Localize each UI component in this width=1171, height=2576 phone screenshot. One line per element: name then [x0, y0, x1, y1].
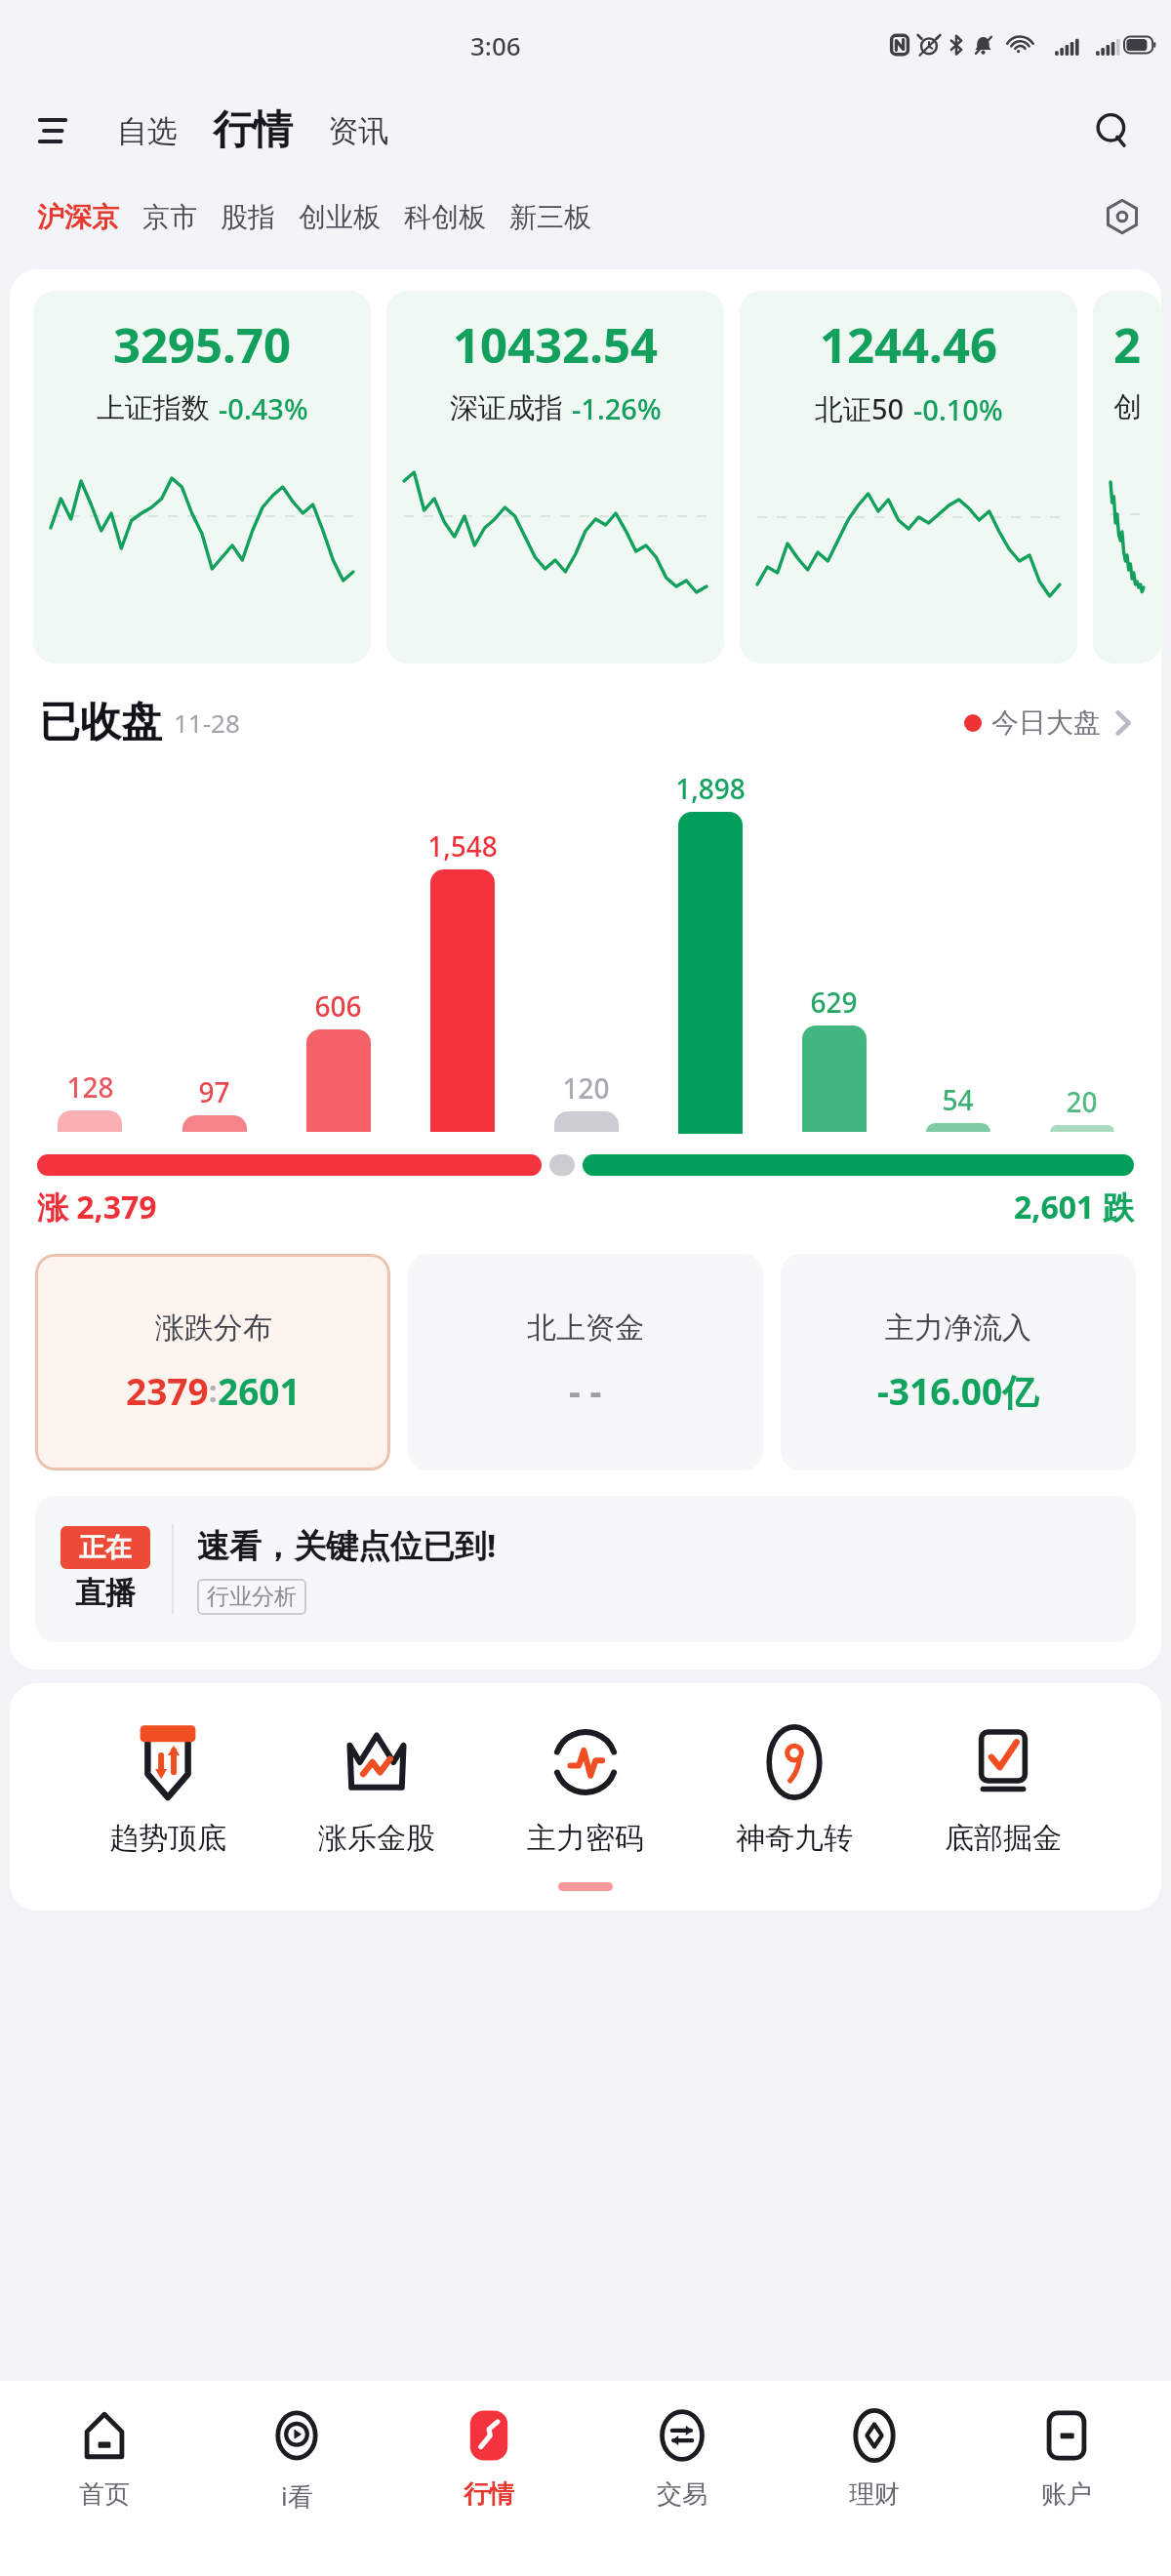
staticText: 科创板 — [404, 200, 486, 234]
staticText: 行业分析 — [207, 1583, 297, 1611]
staticText: 主力密码 — [527, 1820, 644, 1857]
staticText: 行情 — [464, 2478, 514, 2511]
staticText: 20 — [1066, 1083, 1098, 1120]
staticText: 128 — [66, 1068, 114, 1106]
button[interactable]: 京市 — [131, 192, 209, 242]
staticText: 北证50 — [815, 389, 905, 428]
staticText: 10432.54 — [453, 312, 658, 378]
button[interactable]: 交易 — [594, 2381, 770, 2511]
staticText: 1,548 — [427, 827, 498, 865]
staticText: 趋势顶底 — [109, 1820, 226, 1857]
staticText: 速看，关键点位已到! — [197, 1523, 497, 1567]
staticText: 账户 — [1041, 2478, 1092, 2511]
staticText: 北上资金 — [527, 1309, 644, 1347]
staticText: 主力净流入 — [885, 1309, 1031, 1347]
button[interactable]: 自选 — [107, 104, 187, 158]
button[interactable]: 行情 — [401, 2381, 577, 2511]
button[interactable]: 1,548 — [400, 770, 524, 1139]
button[interactable]: i看 — [209, 2381, 384, 2514]
staticText: - - — [569, 1366, 602, 1415]
button[interactable]: 账户 — [979, 2381, 1154, 2511]
button[interactable]: 创业板 — [287, 192, 392, 242]
button[interactable]: 新三板 — [498, 192, 603, 242]
button[interactable]: Menu — [27, 105, 78, 156]
button[interactable]: 主力密码 — [521, 1716, 650, 1861]
staticText: 自选 — [117, 112, 178, 150]
staticText: 97 — [198, 1073, 230, 1110]
staticText: : — [209, 1371, 218, 1411]
staticText: 首页 — [79, 2478, 130, 2511]
button[interactable]: 神奇九转 — [730, 1716, 859, 1861]
staticText: 2 — [1113, 312, 1142, 378]
button[interactable]: Search — [1081, 100, 1144, 162]
button[interactable]: 资讯 — [318, 104, 398, 158]
button[interactable]: Settings — [1095, 189, 1150, 244]
staticText: -0.43% — [219, 389, 308, 427]
staticText: 涨乐金股 — [318, 1820, 435, 1857]
button[interactable]: 底部掘金 — [939, 1716, 1068, 1861]
button[interactable]: 20 — [1020, 770, 1144, 1139]
button[interactable]: 首页 — [17, 2381, 192, 2511]
staticText: 2601 — [218, 1366, 301, 1415]
staticText: 今日大盘 — [991, 705, 1101, 740]
staticText: -0.10% — [913, 390, 1003, 428]
staticText: 行情 — [213, 105, 293, 156]
staticText: 底部掘金 — [945, 1820, 1062, 1857]
staticText: 3:06 — [470, 28, 521, 62]
staticText: 2379 — [126, 1366, 209, 1415]
staticText: 1,898 — [675, 770, 746, 807]
staticText: 正在 — [79, 1531, 132, 1564]
staticText: 3295.70 — [113, 312, 291, 378]
staticText: 606 — [314, 987, 362, 1025]
button[interactable]: 涨乐金股 — [312, 1716, 441, 1861]
staticText: 神奇九转 — [736, 1820, 853, 1857]
staticText: 上证指数 — [97, 390, 210, 426]
button[interactable]: 行情 — [205, 101, 301, 160]
staticText: 创 — [1113, 389, 1142, 425]
button[interactable]: 629 — [772, 770, 896, 1139]
button[interactable]: 2 — [1093, 291, 1161, 664]
staticText: 股指 — [221, 200, 275, 234]
staticText: 理财 — [849, 2478, 900, 2511]
staticText: 涨 2,379 — [37, 1186, 157, 1228]
staticText: -1.26% — [572, 389, 662, 427]
button[interactable]: 股指 — [209, 192, 287, 242]
staticText: 11-28 — [174, 705, 240, 740]
button[interactable]: 10432.54 — [386, 291, 724, 664]
button[interactable]: 1,898 — [648, 770, 772, 1139]
staticText: 涨跌分布 — [155, 1309, 272, 1347]
staticText: 直播 — [75, 1574, 136, 1612]
button[interactable]: 128 — [27, 770, 152, 1139]
button[interactable]: 主力净流入 — [781, 1254, 1136, 1470]
staticText: 629 — [810, 984, 858, 1021]
button[interactable]: 今日大盘 — [964, 705, 1132, 740]
staticText: 已收盘 — [39, 697, 162, 748]
button[interactable]: 54 — [896, 770, 1020, 1139]
staticText: 2,601 跌 — [1014, 1186, 1134, 1228]
staticText: 54 — [942, 1081, 974, 1118]
staticText: -316.00亿 — [877, 1366, 1039, 1416]
staticText: 创业板 — [299, 200, 381, 234]
button[interactable]: 120 — [524, 770, 648, 1139]
staticText: 1244.46 — [820, 312, 997, 378]
button[interactable]: 北上资金 — [408, 1254, 763, 1470]
button[interactable]: 涨跌分布 — [35, 1254, 390, 1470]
staticText: 资讯 — [328, 112, 388, 150]
button[interactable]: 沪深京 — [25, 192, 131, 242]
button[interactable]: 3295.70 — [33, 291, 371, 664]
staticText: 沪深京 — [37, 200, 119, 234]
staticText: i看 — [281, 2478, 313, 2514]
staticText: 京市 — [142, 200, 197, 234]
staticText: 深证成指 — [450, 390, 563, 426]
button[interactable]: 趋势顶底 — [103, 1716, 232, 1861]
button[interactable]: 1244.46 — [740, 291, 1077, 664]
staticText: 交易 — [657, 2478, 707, 2511]
button[interactable]: 理财 — [787, 2381, 962, 2511]
button[interactable]: 606 — [276, 770, 400, 1139]
button[interactable]: 97 — [152, 770, 276, 1139]
button[interactable]: 科创板 — [392, 192, 498, 242]
button[interactable]: 正在 — [35, 1496, 1136, 1642]
staticText: 新三板 — [509, 200, 591, 234]
staticText: 120 — [562, 1069, 610, 1107]
